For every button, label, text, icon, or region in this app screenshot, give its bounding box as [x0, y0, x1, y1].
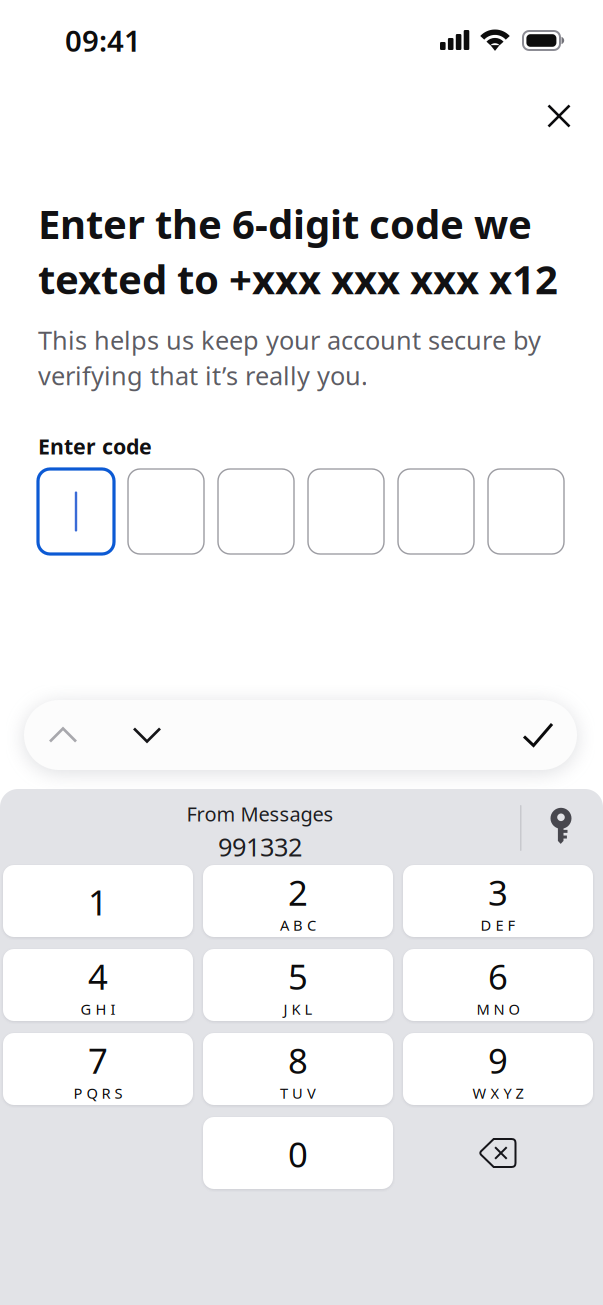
staticText: J K L: [283, 999, 312, 1019]
staticText: G H I: [80, 999, 115, 1019]
staticText: 1: [88, 879, 108, 925]
button[interactable]: Previous field: [34, 700, 92, 770]
button[interactable]: 0: [203, 1117, 393, 1189]
staticText: A B C: [280, 915, 316, 935]
button[interactable]: 1: [3, 865, 193, 937]
button[interactable]: 9: [403, 1033, 593, 1105]
button[interactable]: 2: [203, 865, 393, 937]
staticText: M N O: [476, 999, 519, 1019]
button[interactable]: Next field: [118, 700, 176, 770]
button[interactable]: 4: [3, 949, 193, 1021]
button[interactable]: 8: [203, 1033, 393, 1105]
staticText: 2: [288, 869, 308, 915]
button[interactable]: Done: [509, 700, 567, 770]
staticText: verifying that it’s really you.: [38, 359, 368, 392]
button[interactable]: Delete: [403, 1117, 593, 1189]
button[interactable]: 7: [3, 1033, 193, 1105]
staticText: From Messages: [186, 800, 333, 827]
staticText: 09:41: [65, 21, 141, 60]
staticText: 3: [488, 869, 508, 915]
staticText: 5: [288, 953, 308, 999]
staticText: 7: [88, 1037, 108, 1083]
staticText: P Q R S: [73, 1083, 122, 1103]
staticText: 4: [88, 953, 108, 999]
staticText: 0: [288, 1131, 308, 1177]
button[interactable]: Close: [523, 80, 595, 152]
staticText: W X Y Z: [472, 1083, 523, 1103]
staticText: Enter the 6-digit code we: [38, 197, 532, 250]
staticText: D E F: [480, 915, 515, 935]
staticText: 6: [488, 953, 508, 999]
button[interactable]: 5: [203, 949, 393, 1021]
staticText: 991332: [218, 830, 302, 864]
button[interactable]: Passwords: [534, 798, 588, 854]
staticText: 8: [288, 1037, 308, 1083]
staticText: Enter code: [38, 432, 152, 460]
staticText: texted to +xxx xxx xxx x12: [38, 252, 558, 305]
button[interactable]: 6: [403, 949, 593, 1021]
staticText: 9: [488, 1037, 508, 1083]
staticText: T U V: [280, 1083, 316, 1103]
staticText: This helps us keep your account secure b…: [38, 323, 541, 357]
button[interactable]: 3: [403, 865, 593, 937]
